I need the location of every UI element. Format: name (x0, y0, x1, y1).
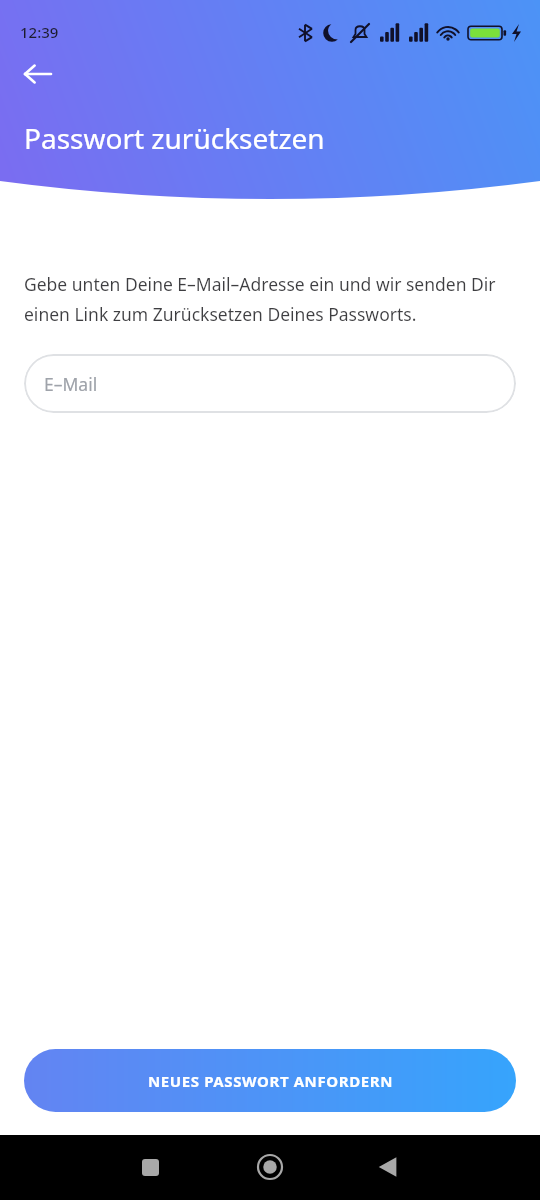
staticText: Gebe unten Deine E–Mail–Adresse ein und … (24, 272, 516, 326)
staticText: 12:39 (20, 22, 59, 42)
button[interactable]: E–Mail (24, 354, 516, 413)
button[interactable]: Zurück (364, 1143, 412, 1191)
button[interactable]: Startbildschirm (246, 1143, 294, 1191)
button[interactable]: Letzte Apps (126, 1143, 174, 1191)
button[interactable]: NEUES PASSWORT ANFORDERN (24, 1049, 516, 1112)
staticText: Passwort zurücksetzen (24, 119, 325, 157)
staticText: NEUES PASSWORT ANFORDERN (148, 1071, 393, 1091)
button[interactable]: Zurück (14, 50, 62, 98)
staticText: E–Mail (44, 372, 98, 396)
